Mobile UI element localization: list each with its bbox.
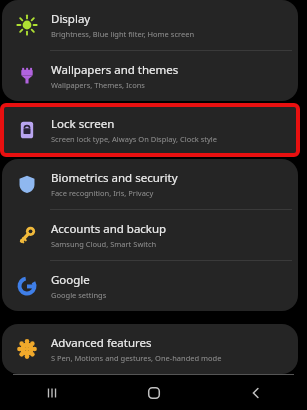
staticText: Brightness, Blue light filter, Home scre…: [51, 29, 195, 39]
button[interactable]: Display: [2, 0, 298, 50]
staticText: Google settings: [51, 290, 107, 300]
staticText: Wallpapers, Themes, Icons: [51, 80, 145, 90]
button[interactable]: Advanced features: [2, 324, 298, 374]
button[interactable]: Wallpapers and themes: [2, 51, 298, 101]
staticText: Google: [51, 272, 90, 288]
button[interactable]: Biometrics and security: [2, 159, 298, 209]
button[interactable]: Lock screen: [2, 105, 298, 155]
button[interactable]: Accounts and backup: [2, 210, 298, 260]
staticText: Face recognition, Iris, Privacy: [51, 188, 154, 198]
staticText: Biometrics and security: [51, 170, 178, 186]
staticText: Lock screen: [51, 116, 115, 132]
button[interactable]: Google: [2, 261, 298, 311]
button[interactable]: Home: [103, 375, 205, 410]
button[interactable]: Back: [205, 375, 307, 410]
staticText: Accounts and backup: [51, 221, 167, 237]
staticText: Screen lock type, Always On Display, Clo…: [51, 134, 218, 144]
button[interactable]: Recent apps: [0, 375, 103, 410]
staticText: Advanced features: [51, 335, 152, 351]
staticText: Wallpapers and themes: [51, 62, 179, 78]
staticText: Display: [51, 11, 91, 27]
staticText: Samsung Cloud, Smart Switch: [51, 239, 157, 249]
staticText: S Pen, Motions and gestures, One-handed …: [51, 353, 222, 363]
